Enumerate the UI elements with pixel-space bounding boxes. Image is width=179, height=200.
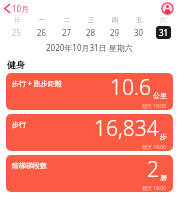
button[interactable]: 29: [103, 25, 127, 40]
button[interactable]: Profile: [161, 2, 174, 15]
staticText: 公里: [153, 91, 167, 100]
staticText: 10月: [12, 3, 30, 14]
button[interactable]: 30: [127, 25, 151, 40]
staticText: 一: [39, 16, 45, 24]
staticText: 朝天 18:00: [142, 144, 167, 151]
button[interactable]: 27: [54, 25, 79, 40]
staticText: 步: [160, 132, 167, 141]
staticText: 朝天 18:00: [142, 103, 167, 110]
staticText: 健身: [7, 59, 25, 70]
button[interactable]: 28: [79, 25, 103, 40]
staticText: 31: [159, 27, 169, 38]
staticText: 階梯梯段數: [12, 161, 47, 170]
staticText: 四: [112, 16, 118, 24]
staticText: 30: [134, 27, 144, 38]
staticText: 26: [37, 27, 47, 38]
button[interactable]: 步行: [6, 114, 173, 151]
staticText: 10.6: [110, 73, 152, 102]
staticText: 層: [160, 173, 167, 182]
staticText: 日: [14, 16, 20, 24]
button[interactable]: 步行 + 跑步距離: [6, 73, 173, 110]
staticText: 朝天 18:00: [142, 185, 167, 192]
staticText: 25: [12, 27, 22, 38]
staticText: 步行 + 跑步距離: [12, 79, 62, 89]
staticText: 28: [86, 27, 96, 38]
button[interactable]: 25: [4, 25, 29, 40]
staticText: 2020年10月31日 星期六: [46, 42, 133, 53]
button[interactable]: Back: [0, 3, 34, 14]
staticText: 16,834: [94, 114, 159, 143]
staticText: 二: [64, 16, 70, 24]
staticText: 五: [136, 16, 142, 24]
staticText: 三: [88, 16, 94, 24]
staticText: 29: [110, 27, 120, 38]
staticText: 步行: [12, 120, 26, 129]
staticText: 六: [160, 16, 166, 24]
other: Back: [4, 4, 10, 13]
staticText: 2: [147, 155, 159, 184]
button[interactable]: 階梯梯段數: [6, 155, 173, 192]
button[interactable]: 26: [29, 25, 54, 40]
staticText: 27: [62, 27, 72, 38]
button[interactable]: 31: [151, 25, 175, 40]
